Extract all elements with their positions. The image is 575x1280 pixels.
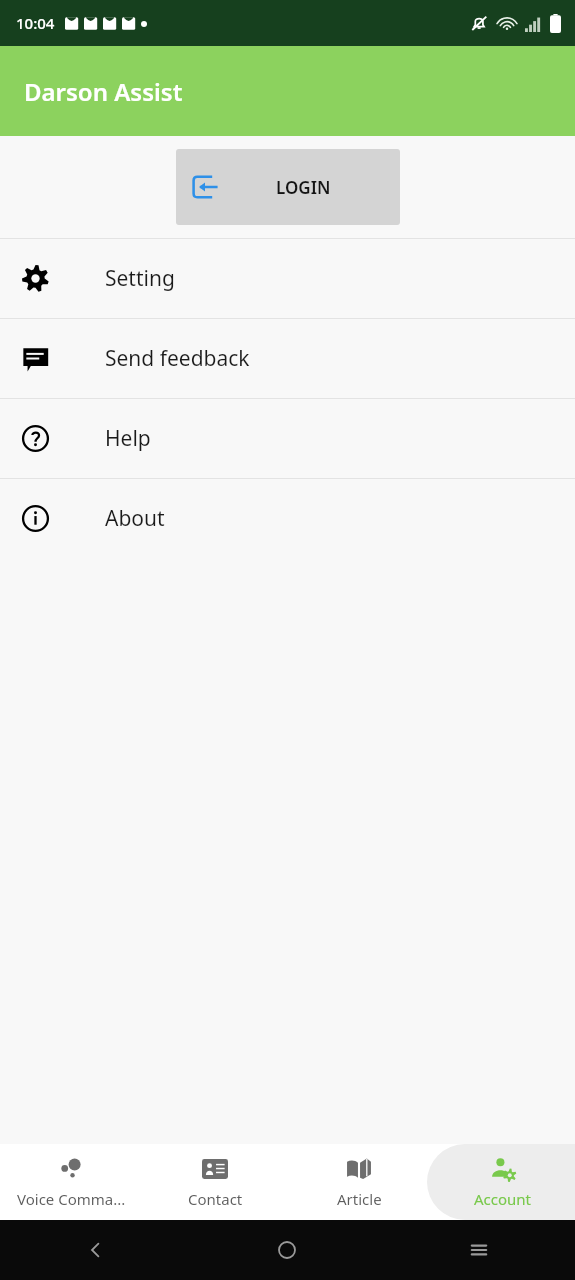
button[interactable]: Contact (143, 1144, 287, 1220)
button[interactable]: Setting (0, 239, 575, 318)
staticText: Send feedback (105, 344, 250, 373)
button[interactable]: Account (431, 1144, 575, 1220)
button[interactable]: Voice Comma... (0, 1144, 143, 1220)
button[interactable]: Help (0, 399, 575, 478)
staticText: Account (474, 1189, 532, 1209)
staticText: Contact (188, 1189, 243, 1209)
staticText: 10:04 (16, 13, 55, 33)
button[interactable]: Send feedback (0, 319, 575, 398)
staticText: Voice Comma... (17, 1189, 126, 1209)
staticText: Help (105, 424, 151, 453)
button[interactable]: LOGIN (176, 149, 400, 225)
button[interactable]: Article (287, 1144, 431, 1220)
staticText: Article (337, 1189, 382, 1209)
button[interactable]: About (0, 479, 575, 558)
button[interactable]: Back (72, 1226, 120, 1274)
staticText: About (105, 504, 165, 533)
button[interactable]: Home (263, 1226, 311, 1274)
staticText: Darson Assist (24, 75, 183, 108)
staticText: LOGIN (276, 176, 331, 199)
button[interactable]: Recent apps (455, 1226, 503, 1274)
staticText: Setting (105, 264, 175, 293)
